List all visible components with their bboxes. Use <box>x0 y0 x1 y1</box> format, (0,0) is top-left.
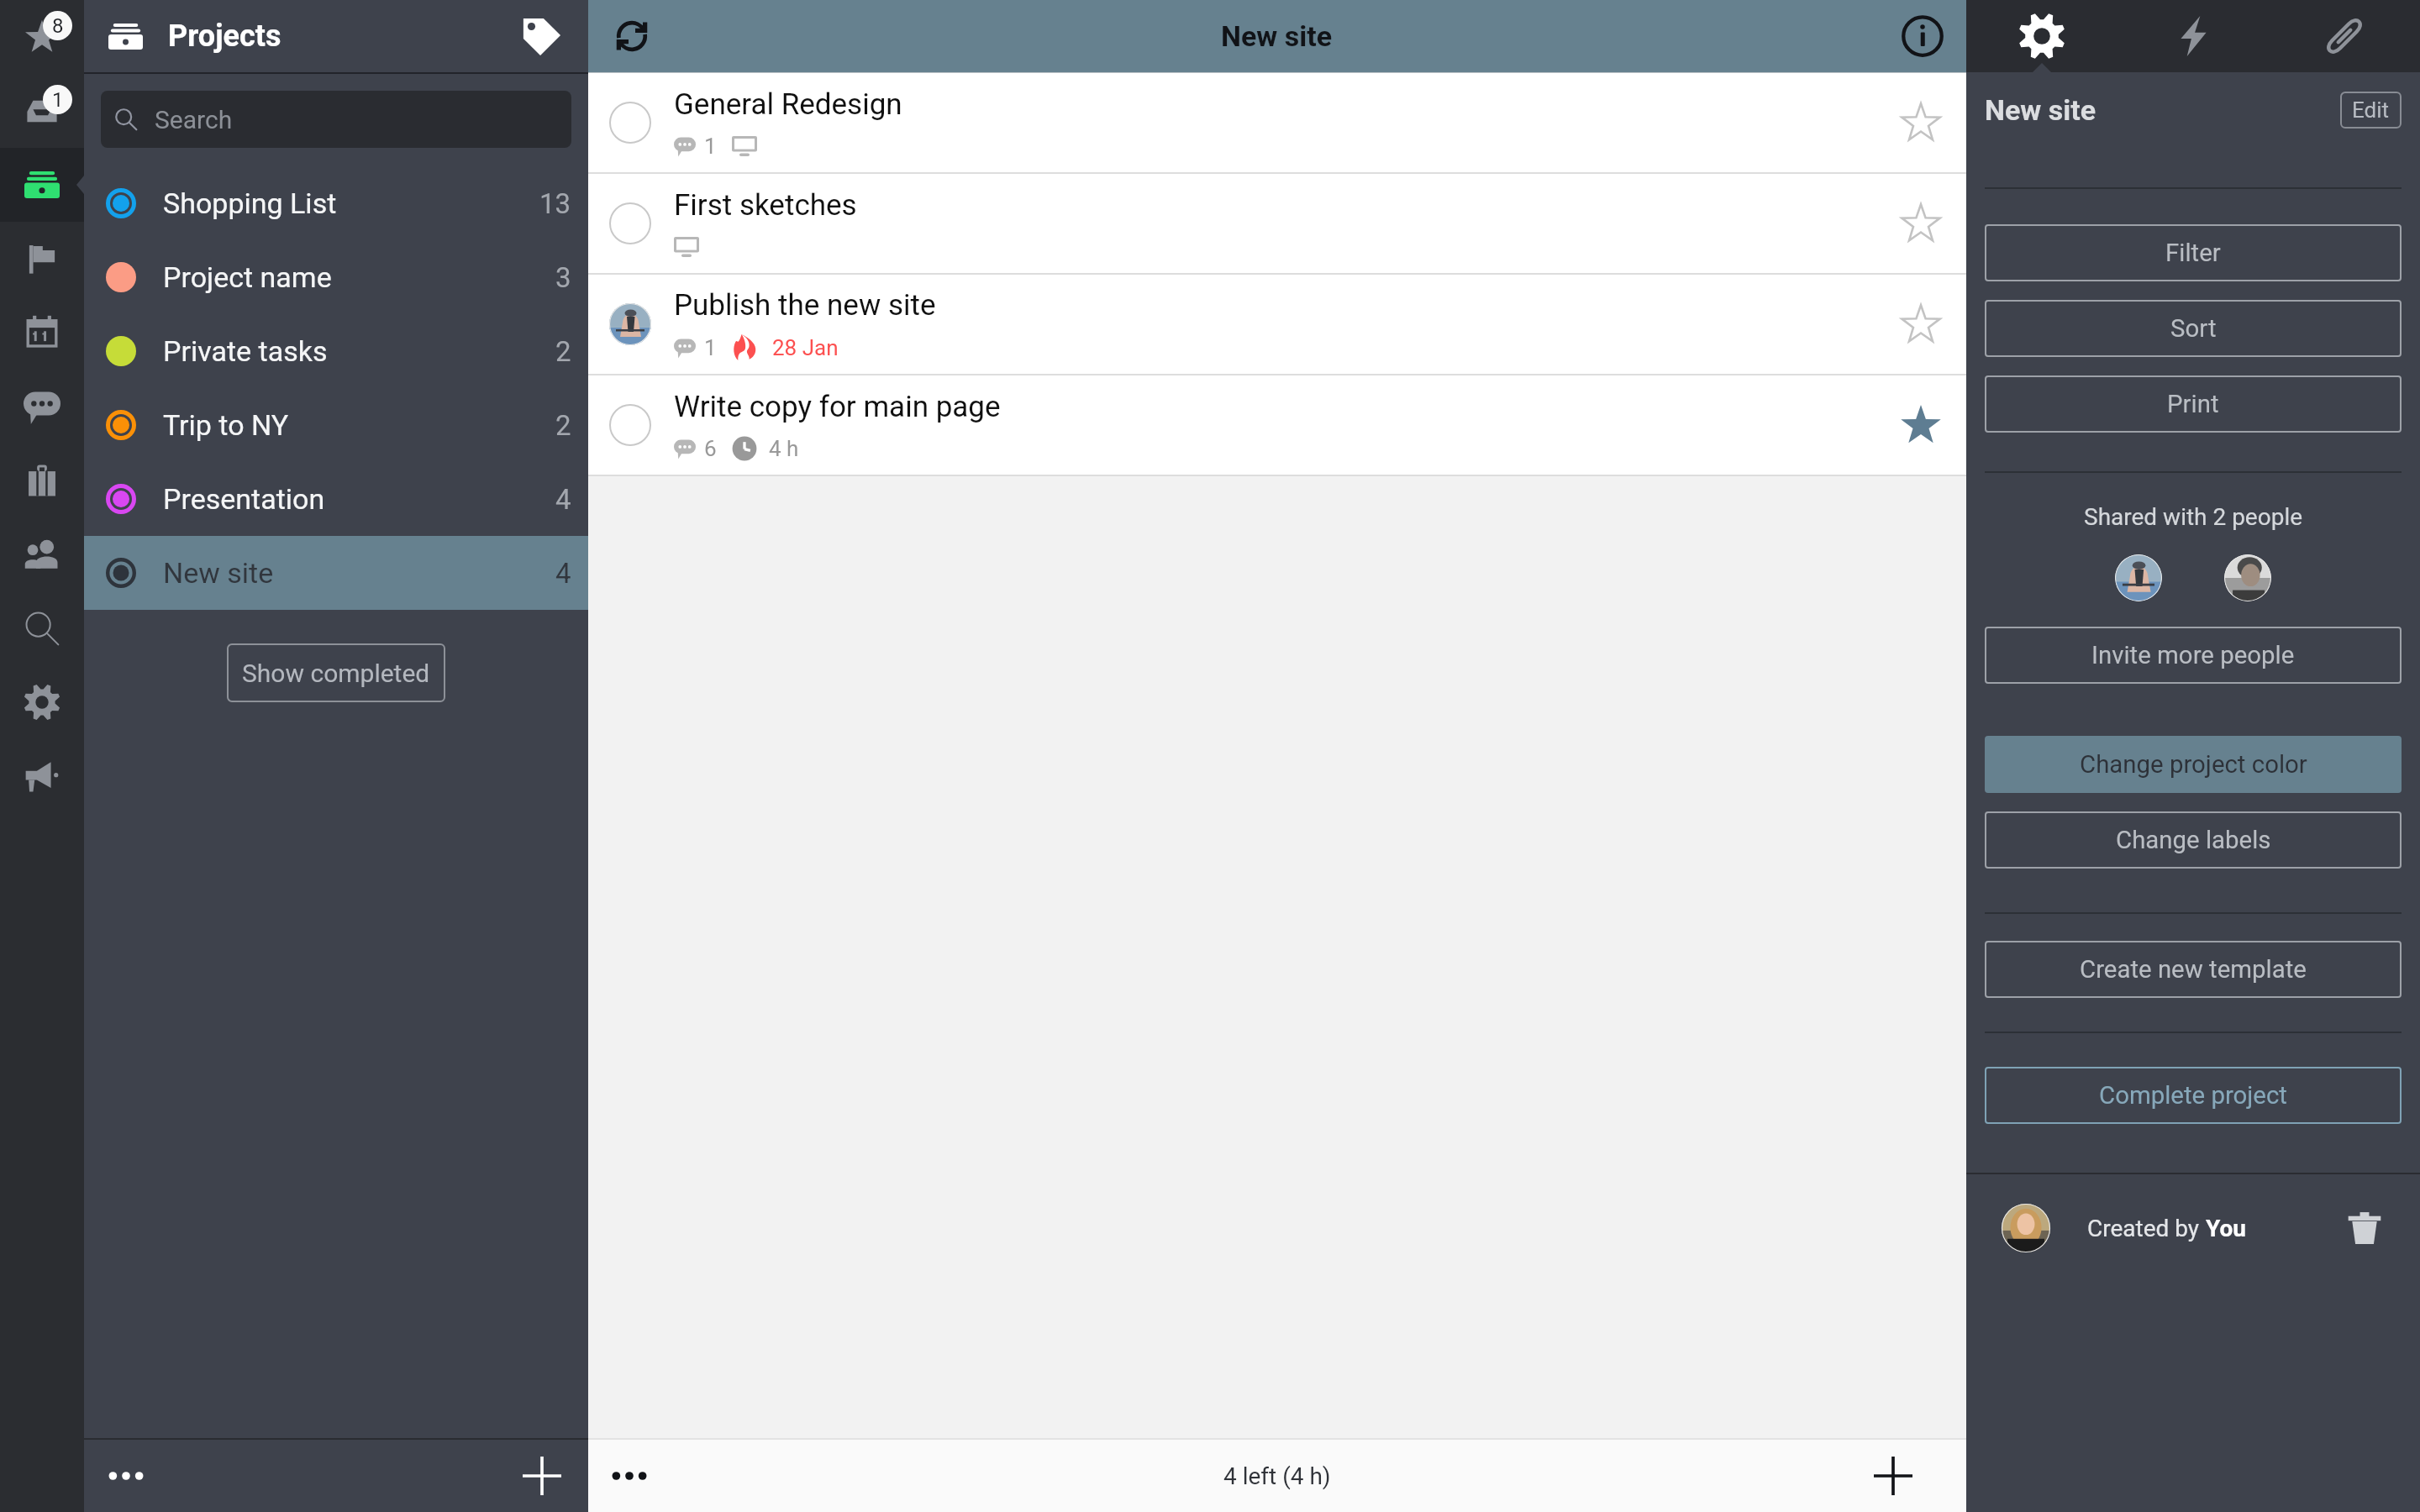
staticText: New site <box>163 556 274 590</box>
button[interactable]: Projects <box>84 0 588 72</box>
button[interactable]: Invite more people <box>1985 627 2402 684</box>
button[interactable]: Sort <box>1985 300 2402 357</box>
button[interactable]: Trip to NY <box>84 388 588 462</box>
button[interactable]: Settings <box>1966 0 2117 72</box>
button[interactable]: Attachments <box>2269 0 2420 72</box>
staticText: Change project color <box>2080 750 2307 779</box>
button[interactable]: Publish the new site <box>588 275 1966 374</box>
button[interactable]: Navigation item <box>0 444 84 517</box>
staticText: Trip to NY <box>163 408 289 442</box>
button[interactable]: Private tasks <box>84 314 588 388</box>
staticText: New site <box>1221 19 1333 53</box>
button[interactable]: Write copy for main page <box>588 375 1966 475</box>
button[interactable]: Project name <box>84 240 588 314</box>
staticText: 4 left (4 h) <box>1223 1462 1331 1490</box>
staticText: First sketches <box>674 188 857 223</box>
button[interactable]: More options <box>588 1440 671 1512</box>
button[interactable]: Shopping List <box>84 166 588 240</box>
staticText: Shared with 2 people <box>2084 503 2303 531</box>
staticText: Filter <box>2165 239 2221 267</box>
staticText: Show completed <box>242 659 430 688</box>
staticText: 3 <box>555 261 571 294</box>
button[interactable]: Print <box>1985 375 2402 433</box>
button[interactable]: Navigation item <box>0 148 84 222</box>
staticText: 8 <box>52 14 64 38</box>
staticText: Write copy for main page <box>674 390 1001 424</box>
button[interactable]: New site <box>84 536 588 610</box>
staticText: Shopping List <box>163 186 337 220</box>
staticText: Private tasks <box>163 334 328 368</box>
button[interactable]: Search <box>101 91 571 148</box>
staticText: 2 <box>555 335 571 368</box>
staticText: 13 <box>539 187 571 220</box>
staticText: Search <box>155 105 233 134</box>
button[interactable]: Show completed <box>227 643 445 702</box>
button[interactable]: Refresh <box>588 0 676 72</box>
staticText: Project name <box>163 260 332 294</box>
button[interactable]: General Redesign <box>588 73 1966 172</box>
button[interactable]: Navigation item <box>0 222 84 296</box>
button[interactable]: First sketches <box>588 174 1966 273</box>
button[interactable]: Navigation item <box>0 74 84 148</box>
button[interactable]: Collaborator <box>2115 554 2162 601</box>
staticText: Sort <box>2170 314 2217 343</box>
button[interactable]: Navigation item <box>0 296 84 370</box>
staticText: Edit <box>2352 97 2390 123</box>
staticText: 4 <box>555 557 571 590</box>
button[interactable]: Navigation item <box>0 665 84 739</box>
staticText: Created by <box>2087 1215 2206 1242</box>
button[interactable]: Add project <box>496 1440 588 1512</box>
button[interactable]: Collaborator <box>2224 554 2271 601</box>
button[interactable]: Navigation item <box>0 591 84 665</box>
button[interactable]: Edit <box>2340 92 2402 129</box>
staticText: 1 <box>704 335 717 360</box>
staticText: 4 <box>555 483 571 516</box>
button[interactable]: Add task <box>1820 1440 1966 1512</box>
staticText: 28 Jan <box>772 335 839 360</box>
staticText: 6 <box>704 436 717 461</box>
button[interactable]: Navigation item <box>0 370 84 444</box>
staticText: Publish the new site <box>674 288 936 323</box>
staticText: 1 <box>704 134 717 159</box>
button[interactable]: Navigation item <box>0 739 84 813</box>
staticText: General Redesign <box>674 87 902 122</box>
button[interactable]: Presentation <box>84 462 588 536</box>
button[interactable]: Complete project <box>1985 1067 2402 1124</box>
staticText: Print <box>2167 390 2219 418</box>
staticText: 1 <box>52 88 64 112</box>
staticText: Complete project <box>2099 1081 2287 1110</box>
button[interactable]: Navigation item <box>0 0 84 74</box>
staticText: New site <box>1985 93 2096 127</box>
staticText: You <box>2206 1215 2246 1242</box>
button[interactable]: Delete project <box>2328 1191 2402 1265</box>
staticText: Invite more people <box>2091 641 2295 669</box>
staticText: Projects <box>168 18 281 54</box>
staticText: 2 <box>555 409 571 442</box>
staticText: 4 h <box>769 436 799 461</box>
button[interactable]: Star task <box>1875 275 1966 374</box>
button[interactable]: Change labels <box>1985 811 2402 869</box>
button[interactable]: Change project color <box>1985 736 2402 793</box>
staticText: Change labels <box>2116 826 2271 854</box>
button[interactable]: Labels <box>504 0 578 72</box>
button[interactable]: Navigation item <box>0 517 84 591</box>
button[interactable]: Star task <box>1875 174 1966 273</box>
button[interactable]: Star task <box>1875 375 1966 475</box>
button[interactable]: Project info <box>1879 0 1966 72</box>
button[interactable]: Create new template <box>1985 941 2402 998</box>
button[interactable]: Activity <box>2117 0 2269 72</box>
button[interactable]: More options <box>84 1440 168 1512</box>
staticText: Presentation <box>163 482 325 516</box>
button[interactable]: Filter <box>1985 224 2402 281</box>
staticText: Create new template <box>2080 955 2307 984</box>
button[interactable]: Star task <box>1875 73 1966 172</box>
